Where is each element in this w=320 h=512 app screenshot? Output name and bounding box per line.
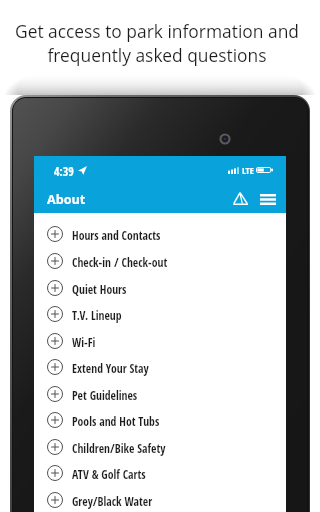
staticText: ATV & Golf Carts [72,466,146,482]
button[interactable]: Pet Guidelines [34,381,286,407]
button[interactable]: T.V. Lineup [34,301,286,327]
staticText: About [47,191,86,208]
button[interactable]: Menu [253,183,283,213]
staticText: Get access to park information and frequ… [0,19,317,67]
staticText: Quiet Hours [72,281,127,297]
staticText: Children/Bike Safety [72,440,166,456]
button[interactable]: Extend Your Stay [34,354,286,380]
button[interactable]: Quiet Hours [34,275,286,301]
button[interactable]: Children/Bike Safety [34,434,286,460]
button[interactable]: Hours and Contacts [34,221,286,247]
button[interactable]: Pools and Hot Tubs [34,407,286,433]
staticText: Hours and Contacts [72,227,161,243]
button[interactable]: ATV & Golf Carts [34,460,286,486]
staticText: 4:39 [54,163,74,179]
staticText: Pools and Hot Tubs [72,413,160,429]
button[interactable]: Check-in / Check-out [34,248,286,274]
staticText: Pet Guidelines [72,387,138,403]
staticText: LTE [242,164,254,177]
staticText: Grey/Black Water [72,493,153,509]
staticText: Extend Your Stay [72,360,149,376]
staticText: Wi-Fi [72,334,96,350]
button[interactable]: Grey/Black Water [34,487,286,512]
staticText: T.V. Lineup [72,307,122,323]
button[interactable]: Wi-Fi [34,328,286,354]
staticText: Check-in / Check-out [72,254,168,270]
button[interactable]: Campground [223,183,253,213]
